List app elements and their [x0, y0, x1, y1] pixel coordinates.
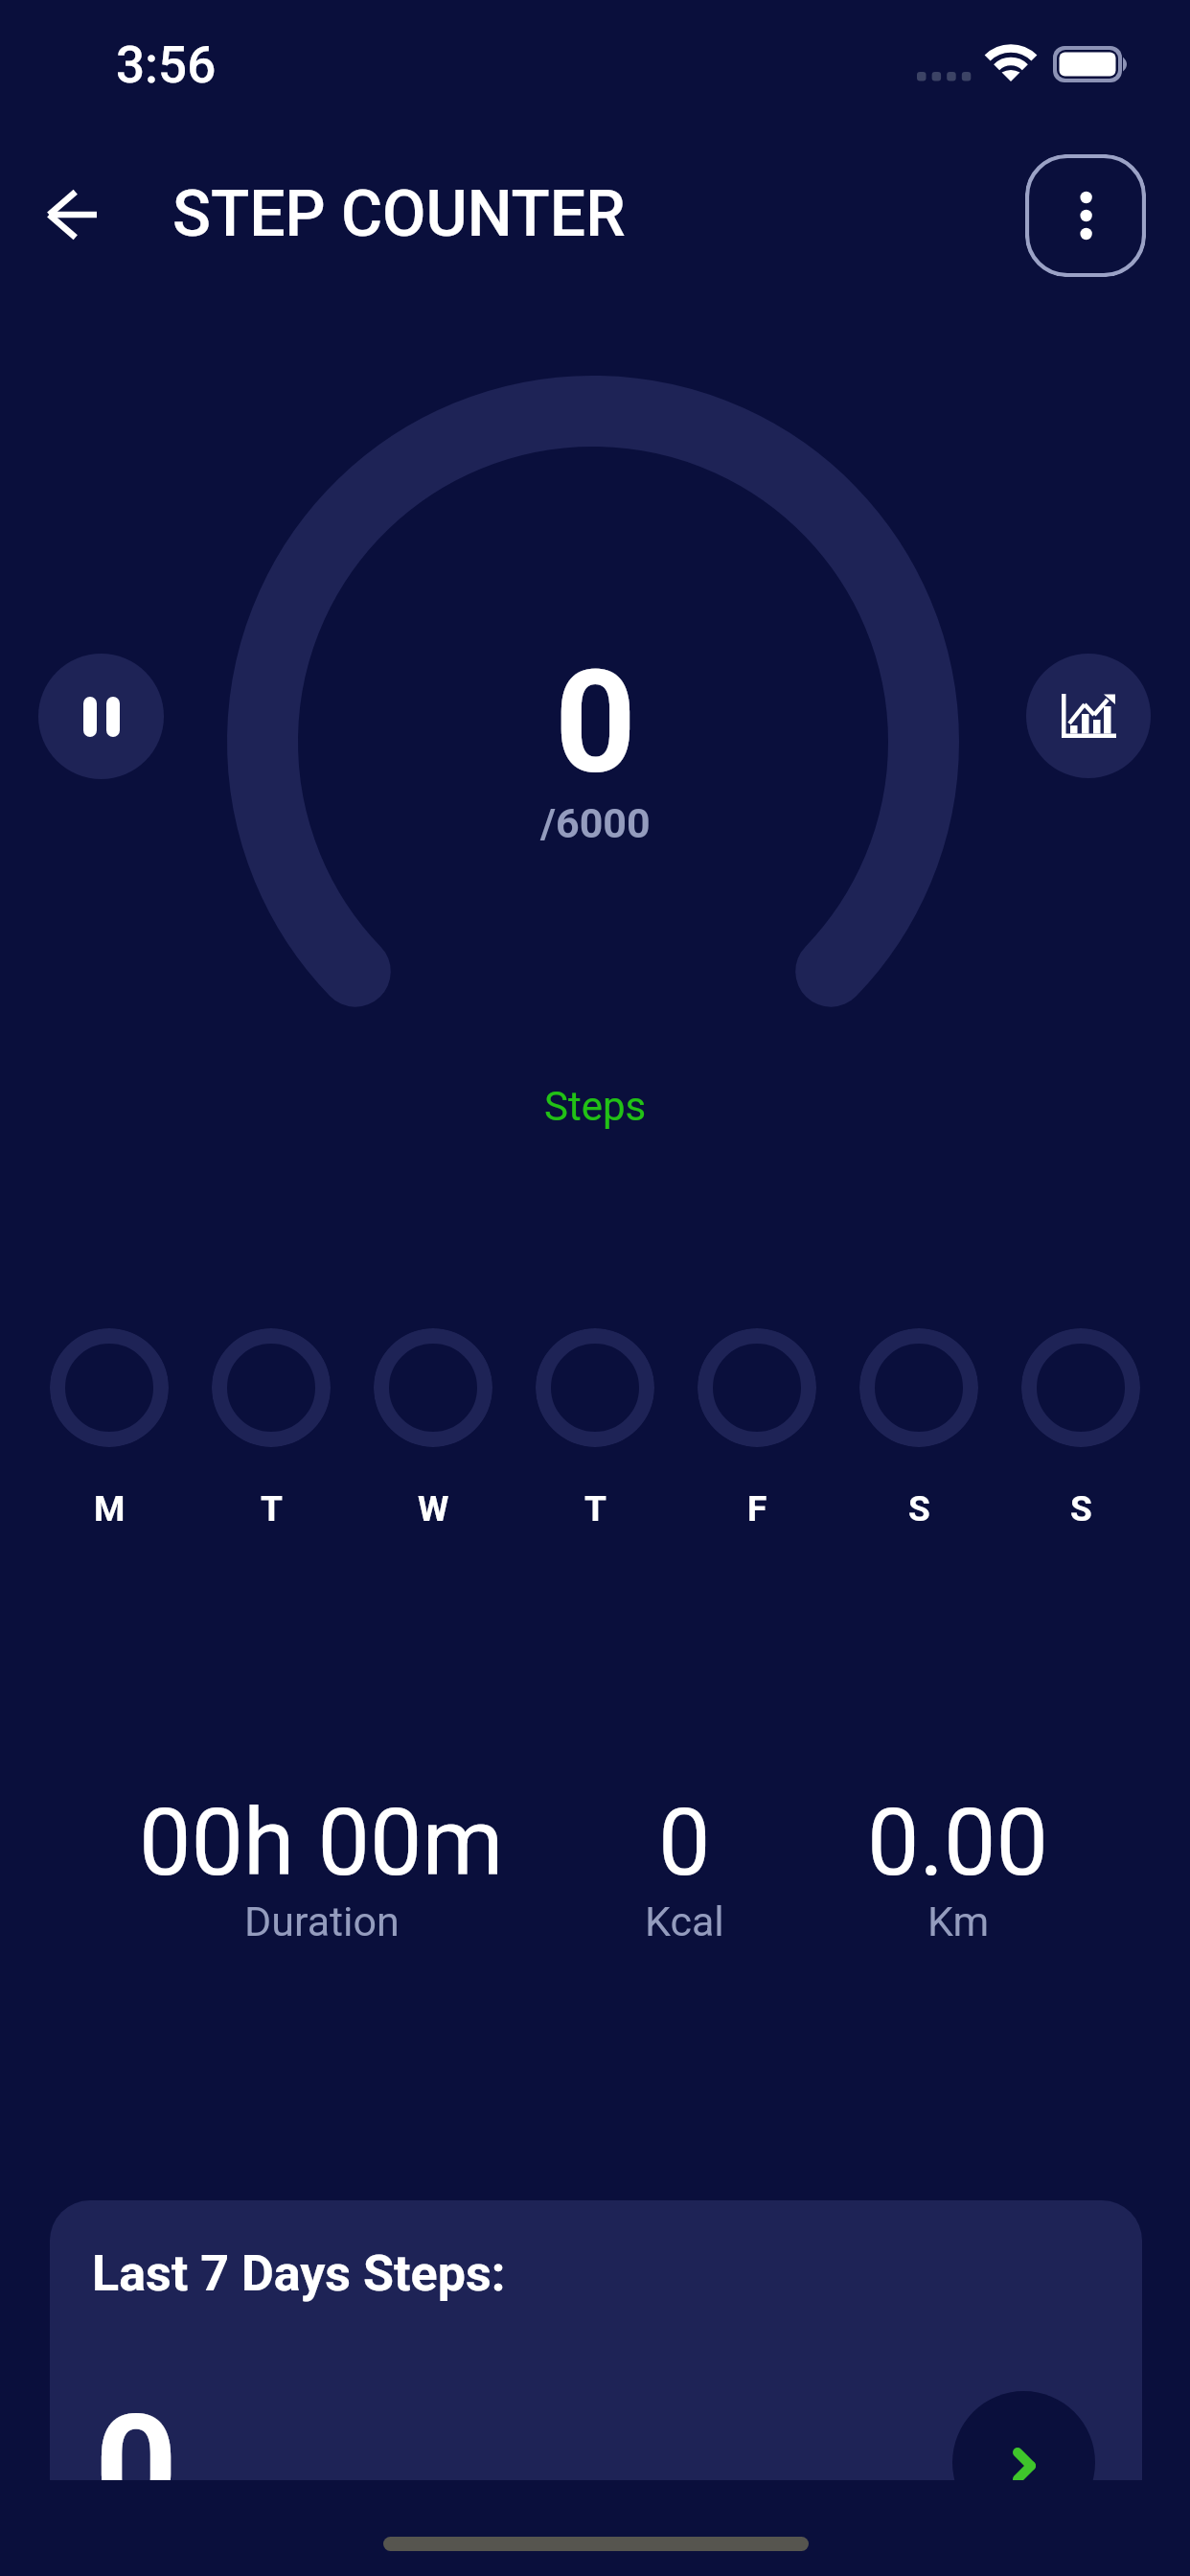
button[interactable] [212, 1328, 331, 1447]
button[interactable] [859, 1328, 978, 1447]
button[interactable]: 00h 00m [110, 1788, 532, 1945]
staticText: 0 [95, 2384, 178, 2480]
button[interactable] [698, 1328, 816, 1447]
button[interactable]: 0 [473, 1788, 895, 1945]
button[interactable]: 0.00 [747, 1788, 1169, 1945]
button[interactable] [536, 1328, 654, 1447]
staticText: 0 [555, 640, 636, 806]
button[interactable] [1021, 1328, 1140, 1447]
staticText: Last 7 Days Steps: [92, 2244, 506, 2303]
staticText: 3:56 [116, 35, 217, 95]
button[interactable]: Statistics [1026, 654, 1151, 778]
staticText: M [94, 1488, 126, 1529]
staticText: Km [927, 1897, 990, 1945]
staticText: Duration [244, 1897, 400, 1945]
button[interactable]: Next [952, 2391, 1095, 2480]
staticText: T [584, 1488, 606, 1529]
button[interactable] [374, 1328, 492, 1447]
staticText: S [908, 1488, 930, 1529]
staticText: /6000 [540, 799, 651, 847]
staticText: 0.00 [867, 1788, 1049, 1897]
button[interactable]: Last 7 Days Steps: [50, 2200, 1142, 2480]
staticText: S [1070, 1488, 1092, 1529]
staticText: Kcal [645, 1897, 724, 1945]
button[interactable]: More options [1025, 154, 1146, 277]
staticText: T [261, 1488, 283, 1529]
button[interactable]: Back [18, 162, 124, 267]
staticText: F [747, 1488, 767, 1529]
staticText: W [418, 1488, 449, 1529]
staticText: 00h 00m [139, 1788, 504, 1897]
button[interactable]: Pause [38, 654, 164, 779]
staticText: 0 [658, 1788, 711, 1897]
staticText: STEP COUNTER [172, 177, 626, 251]
staticText: Steps [544, 1083, 647, 1130]
button[interactable] [50, 1328, 169, 1447]
